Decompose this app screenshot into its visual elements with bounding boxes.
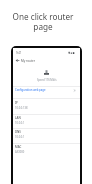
staticText: Configuration web page bbox=[15, 88, 46, 92]
staticText: AX3000 bbox=[15, 150, 25, 154]
staticText: DNS bbox=[15, 130, 21, 134]
button[interactable]: DNS bbox=[13, 128, 80, 143]
staticText: 9:41 bbox=[16, 51, 22, 54]
button[interactable]: LAN bbox=[13, 114, 80, 129]
staticText: 10.0.0.138 bbox=[15, 106, 28, 110]
staticText: LAN bbox=[15, 116, 21, 120]
button[interactable]: MAC bbox=[13, 143, 80, 158]
staticText: 10.0.0.1 bbox=[15, 135, 25, 139]
staticText: My router bbox=[21, 59, 35, 63]
button[interactable]: Configuration web page bbox=[13, 87, 80, 93]
button[interactable]: Back bbox=[15, 58, 20, 63]
staticText: IP bbox=[15, 101, 18, 105]
staticText: One click router page bbox=[8, 11, 78, 33]
staticText: MAC bbox=[15, 145, 22, 149]
staticText: 10.0.0.1 bbox=[15, 121, 25, 125]
staticText: Speed 176 Mb/s bbox=[37, 78, 57, 82]
button[interactable]: IP bbox=[13, 99, 80, 114]
